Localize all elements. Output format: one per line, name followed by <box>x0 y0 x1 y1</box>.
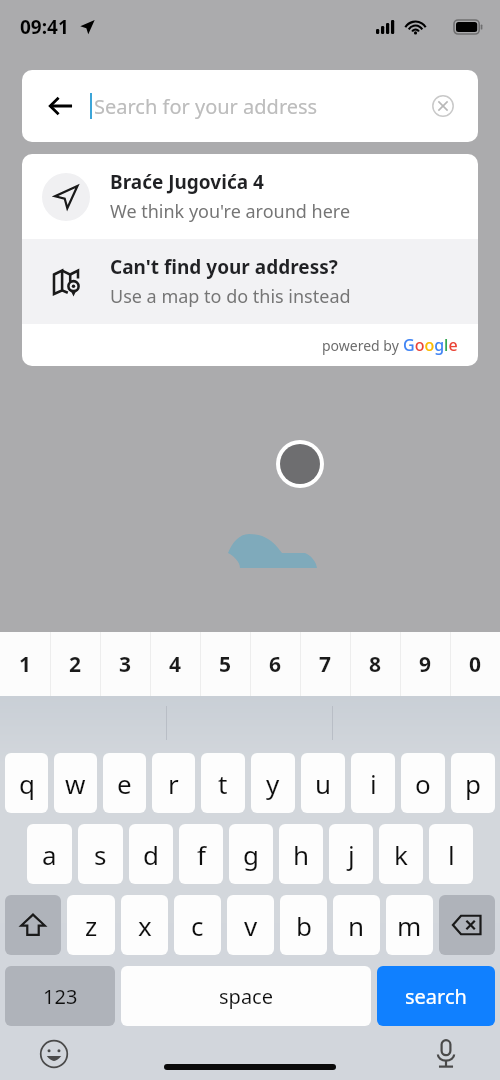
button[interactable]: 0 <box>450 632 500 696</box>
staticText: g <box>243 837 259 872</box>
button[interactable]: l <box>429 824 473 884</box>
staticText: Can't find your address? <box>110 254 338 280</box>
button[interactable]: u <box>301 753 345 813</box>
button[interactable]: 6 <box>250 632 300 696</box>
button[interactable]: o <box>401 753 445 813</box>
button[interactable]: b <box>280 895 327 955</box>
staticText: q <box>19 766 35 801</box>
staticText: 0 <box>469 650 482 679</box>
staticText: 3 <box>119 650 132 679</box>
staticText: o <box>415 766 431 801</box>
staticText: i <box>370 766 377 801</box>
button[interactable]: Braće Jugovića 4 <box>22 154 478 239</box>
staticText: y <box>266 766 280 801</box>
button[interactable]: k <box>379 824 423 884</box>
staticText: k <box>394 837 408 872</box>
staticText: Braće Jugovića 4 <box>110 169 264 195</box>
staticText: We think you're around here <box>110 199 351 224</box>
button[interactable]: r <box>152 753 195 813</box>
staticText: m <box>397 908 422 943</box>
staticText: 123 <box>43 983 78 1010</box>
staticText: 6 <box>269 650 282 679</box>
staticText: d <box>143 837 159 872</box>
staticText: space <box>219 983 273 1010</box>
button[interactable]: n <box>333 895 380 955</box>
button[interactable]: Shift <box>5 895 61 955</box>
staticText: 9 <box>419 650 432 679</box>
button[interactable]: Backspace <box>439 895 495 955</box>
button[interactable]: Emoji <box>34 1034 74 1074</box>
button[interactable]: c <box>174 895 221 955</box>
staticText: v <box>244 908 258 943</box>
staticText: f <box>197 837 206 872</box>
staticText: j <box>348 837 355 872</box>
button[interactable]: z <box>67 895 115 955</box>
button[interactable]: 8 <box>350 632 400 696</box>
button[interactable]: w <box>54 753 97 813</box>
button[interactable]: 5 <box>200 632 250 696</box>
button[interactable]: a <box>27 824 72 884</box>
button[interactable]: g <box>229 824 273 884</box>
staticText: Search for your address <box>94 93 426 120</box>
button[interactable]: 7 <box>300 632 350 696</box>
button[interactable]: i <box>351 753 395 813</box>
staticText: w <box>65 766 86 801</box>
staticText: z <box>85 908 98 943</box>
button[interactable]: d <box>129 824 173 884</box>
button[interactable]: m <box>386 895 433 955</box>
staticText: l <box>448 837 455 872</box>
staticText: 4 <box>169 650 182 679</box>
staticText: 2 <box>69 650 82 679</box>
staticText: 7 <box>319 650 332 679</box>
staticText: r <box>168 766 179 801</box>
staticText: powered by <box>322 336 403 355</box>
staticText: u <box>315 766 332 801</box>
button[interactable]: space <box>121 966 371 1026</box>
staticText: 8 <box>369 650 382 679</box>
staticText: b <box>296 908 312 943</box>
staticText: e <box>117 766 132 801</box>
button[interactable]: e <box>103 753 146 813</box>
button[interactable]: 4 <box>150 632 200 696</box>
button[interactable]: p <box>451 753 495 813</box>
staticText: s <box>94 837 107 872</box>
button[interactable]: Voice input <box>426 1034 466 1074</box>
button[interactable]: search <box>377 966 495 1026</box>
staticText: a <box>42 837 57 872</box>
staticText: x <box>138 908 152 943</box>
button[interactable]: 123 <box>5 966 115 1026</box>
button[interactable]: Back <box>42 87 80 125</box>
button[interactable]: v <box>227 895 274 955</box>
staticText: h <box>293 837 310 872</box>
staticText: Use a map to do this instead <box>110 284 351 309</box>
staticText: t <box>218 766 228 801</box>
staticText: 09:41 <box>20 14 69 40</box>
button[interactable]: j <box>329 824 373 884</box>
button[interactable]: t <box>201 753 245 813</box>
staticText: n <box>348 908 365 943</box>
staticText: 5 <box>219 650 232 679</box>
button[interactable]: h <box>279 824 323 884</box>
button[interactable]: Can't find your address? <box>22 239 478 324</box>
staticText: c <box>191 908 204 943</box>
button[interactable]: s <box>78 824 123 884</box>
staticText: Google <box>403 334 458 356</box>
staticText: search <box>405 983 467 1010</box>
staticText: p <box>465 766 481 801</box>
button[interactable]: x <box>121 895 168 955</box>
button[interactable]: 3 <box>100 632 150 696</box>
button[interactable]: 9 <box>400 632 450 696</box>
button[interactable]: q <box>5 753 48 813</box>
button[interactable]: y <box>251 753 295 813</box>
button[interactable]: Clear <box>426 89 460 123</box>
button[interactable]: 2 <box>50 632 100 696</box>
button[interactable]: 1 <box>0 632 50 696</box>
button[interactable]: Back <box>22 70 478 142</box>
button[interactable]: f <box>179 824 223 884</box>
staticText: 1 <box>19 650 32 679</box>
